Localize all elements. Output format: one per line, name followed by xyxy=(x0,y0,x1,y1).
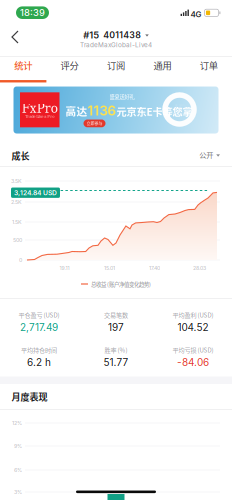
staticText: 胜率 (%) xyxy=(104,345,127,354)
staticText: 4G xyxy=(190,10,201,19)
staticText: 1136 xyxy=(87,102,116,119)
staticText: 3% xyxy=(14,489,22,495)
staticText: 12% xyxy=(12,420,22,426)
staticText: 立即参与 xyxy=(86,120,102,126)
staticText: 成长 xyxy=(11,149,29,162)
staticText: -84.06 xyxy=(177,356,209,368)
staticText: 6% xyxy=(14,467,22,473)
staticText: 订阅 xyxy=(107,58,125,72)
staticText: 1.5K xyxy=(12,219,22,225)
button[interactable]: 统计 xyxy=(0,57,46,80)
staticText: 盛夏送好礼 xyxy=(109,92,134,100)
button[interactable]: 通用 xyxy=(139,57,186,80)
staticText: 4011438 xyxy=(103,30,141,40)
staticText: 平仓盈亏 (USD) xyxy=(18,310,59,319)
staticText: 平均盈利 (USD) xyxy=(172,310,213,319)
staticText: 3,124.84 USD xyxy=(14,189,57,197)
staticText: 高达 xyxy=(65,103,87,119)
staticText: 0 xyxy=(19,257,22,263)
staticText: 17.40 xyxy=(149,265,160,271)
button[interactable]: JD xyxy=(13,86,218,133)
staticText: 统计 xyxy=(14,58,32,72)
staticText: #15 xyxy=(83,29,99,41)
staticText: 平均持仓时间 xyxy=(21,345,57,354)
staticText: 2.5K xyxy=(11,199,22,205)
button[interactable]: 评分 xyxy=(46,57,93,80)
staticText: 订单 xyxy=(200,58,218,72)
staticText: 28.03 xyxy=(193,265,206,271)
button[interactable]: Back xyxy=(3,23,29,49)
staticText: Trade Like a Pro xyxy=(25,114,54,119)
staticText: 月度表现 xyxy=(11,390,47,403)
staticText: TradeMaxGlobal-Live4 xyxy=(80,41,152,49)
staticText: 15.01 xyxy=(104,265,115,271)
staticText: 19.11 xyxy=(59,265,69,271)
staticText: 197 xyxy=(108,321,124,333)
staticText: 元京东E卡等您拿 xyxy=(116,104,192,119)
staticText: 500 xyxy=(13,237,22,243)
staticText: 通用 xyxy=(153,58,171,72)
button[interactable]: 订单 xyxy=(186,57,232,80)
staticText: 交易笔数 xyxy=(104,310,128,319)
staticText: 51.77 xyxy=(103,356,128,368)
staticText: 18:39 xyxy=(20,7,45,18)
staticText: 评分 xyxy=(61,58,79,72)
staticText: 2,717.49 xyxy=(20,321,58,333)
staticText: 公开 xyxy=(199,149,213,160)
button[interactable]: 订阅 xyxy=(93,57,139,80)
staticText: 104.52 xyxy=(177,321,208,333)
staticText: 总收益 (账户净值变化趋势) xyxy=(91,280,151,288)
button[interactable]: #15 xyxy=(0,30,232,40)
staticText: FxPro xyxy=(22,101,58,115)
staticText: 平均亏损 (USD) xyxy=(172,345,213,354)
staticText: 3.5K xyxy=(11,178,22,184)
button[interactable]: 公开 xyxy=(0,150,232,159)
staticText: 6.2 h xyxy=(27,356,51,368)
staticText: JD xyxy=(170,101,188,117)
staticText: 9% xyxy=(14,443,22,449)
